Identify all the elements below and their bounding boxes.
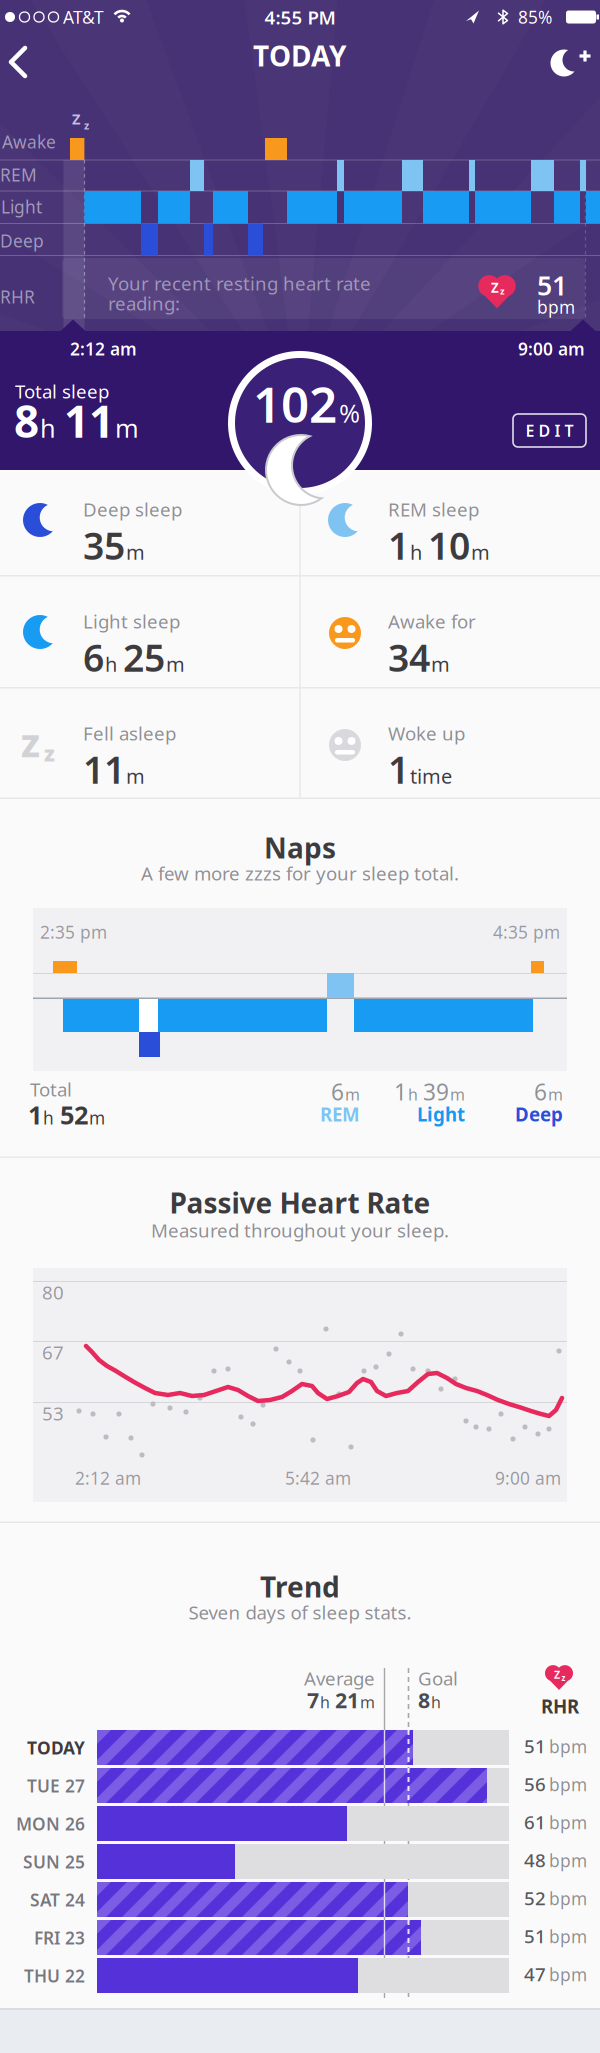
staticText: 4:55 PM	[264, 5, 335, 30]
staticText: 48	[524, 1847, 546, 1872]
staticText: h	[408, 1084, 422, 1105]
staticText: 1	[394, 1076, 407, 1107]
staticText: Deep sleep	[83, 497, 182, 522]
staticText: bpm	[549, 1849, 587, 1872]
staticText: REM sleep	[388, 497, 479, 522]
staticText: m	[89, 1106, 105, 1129]
staticText: Deep	[0, 229, 44, 252]
staticText: z	[84, 118, 89, 132]
staticText: Z	[491, 279, 499, 296]
staticText: z	[500, 285, 505, 297]
staticText: bpm	[537, 295, 575, 318]
staticText: MON 26	[16, 1812, 85, 1835]
staticText: z	[561, 1673, 565, 1683]
staticText: z	[44, 739, 55, 767]
staticText: Seven days of sleep stats.	[188, 1600, 411, 1625]
staticText: 1	[388, 520, 409, 570]
staticText: Light	[417, 1102, 465, 1127]
button[interactable]	[547, 46, 593, 80]
staticText: m	[166, 651, 185, 677]
button[interactable]	[0, 0, 36, 36]
staticText: 51	[524, 1733, 546, 1758]
staticText: 39	[423, 1076, 449, 1107]
staticText: 9:00 am	[495, 1466, 561, 1489]
staticText: 80	[42, 1280, 64, 1305]
staticText: 47	[524, 1961, 546, 1986]
staticText: Light sleep	[83, 609, 180, 634]
staticText: FRI 23	[34, 1926, 85, 1949]
staticText: m	[431, 651, 450, 677]
staticText: 53	[42, 1401, 64, 1426]
staticText: m	[115, 411, 139, 445]
staticText: Light	[1, 195, 42, 218]
staticText: time	[410, 763, 452, 789]
staticText: 52	[524, 1885, 546, 1910]
staticText: Your recent resting heart rate	[108, 271, 371, 296]
staticText: Total sleep	[15, 379, 109, 404]
staticText: h	[320, 1691, 334, 1713]
staticText: m	[360, 1691, 375, 1713]
staticText: REM	[0, 163, 37, 186]
staticText: 21	[335, 1686, 359, 1714]
staticText: 8	[418, 1686, 430, 1714]
staticText: 7	[307, 1686, 319, 1714]
staticText: E D I T	[525, 420, 573, 441]
staticText: Z	[554, 1668, 560, 1682]
staticText: 11	[83, 744, 125, 794]
staticText: m	[126, 763, 145, 789]
button[interactable]: E D I T	[513, 414, 586, 447]
staticText: 2:12 am	[70, 337, 137, 360]
staticText: bpm	[549, 1925, 587, 1948]
staticText: 61	[524, 1809, 546, 1834]
staticText: 6	[331, 1076, 344, 1107]
staticText: 56	[524, 1771, 546, 1796]
staticText: TODAY	[253, 37, 347, 74]
staticText: A few more zzzs for your sleep total.	[141, 861, 459, 886]
staticText: TODAY	[27, 1736, 85, 1759]
staticText: 10	[428, 520, 470, 570]
staticText: Naps	[264, 829, 336, 866]
staticText: bpm	[549, 1773, 587, 1796]
staticText: bpm	[549, 1811, 587, 1834]
staticText: m	[126, 539, 145, 565]
staticText: 9:00 am	[518, 337, 585, 360]
staticText: TUE 27	[27, 1774, 85, 1797]
staticText: 51	[537, 267, 567, 303]
staticText: Awake	[2, 130, 56, 153]
staticText: m	[548, 1084, 563, 1105]
staticText: RHR	[541, 1694, 579, 1719]
staticText: 6	[534, 1076, 547, 1107]
staticText: THU 22	[24, 1964, 85, 1987]
staticText: Z	[72, 109, 80, 129]
staticText: 51	[524, 1923, 546, 1948]
staticText: Fell asleep	[83, 721, 176, 746]
staticText: 2:35 pm	[40, 920, 107, 943]
staticText: 11	[64, 391, 114, 450]
staticText: Deep	[515, 1102, 563, 1127]
staticText: 1	[388, 744, 409, 794]
staticText: Trend	[260, 1568, 340, 1605]
staticText: h	[40, 411, 63, 445]
staticText: bpm	[549, 1887, 587, 1910]
staticText: m	[345, 1084, 360, 1105]
staticText: h	[410, 539, 427, 565]
staticText: AT&T	[63, 5, 104, 28]
staticText: 2:12 am	[75, 1466, 141, 1489]
staticText: 85%	[518, 5, 552, 28]
staticText: 67	[42, 1340, 64, 1365]
staticText: bpm	[549, 1735, 587, 1758]
staticText: %	[339, 396, 360, 430]
staticText: REM	[320, 1102, 360, 1127]
staticText: h	[105, 651, 122, 677]
staticText: SAT 24	[30, 1888, 85, 1911]
staticText: SUN 25	[23, 1850, 85, 1873]
staticText: 35	[83, 520, 125, 570]
staticText: Awake for	[388, 609, 476, 634]
staticText: reading:	[108, 291, 180, 316]
staticText: Woke up	[388, 721, 465, 746]
staticText: Average	[304, 1666, 375, 1691]
staticText: h	[43, 1106, 59, 1129]
staticText: Measured throughout your sleep.	[151, 1218, 449, 1243]
staticText: Passive Heart Rate	[169, 1184, 430, 1221]
staticText: 4:35 pm	[493, 920, 560, 943]
